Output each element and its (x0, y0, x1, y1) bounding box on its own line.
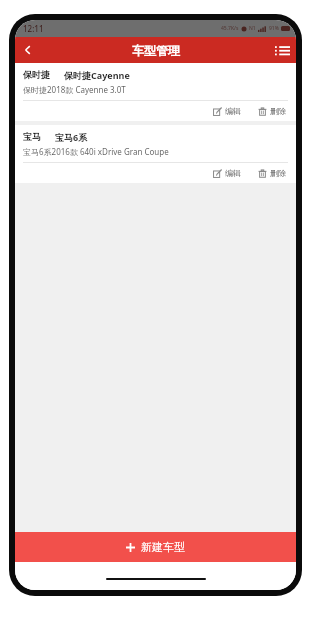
staticText: 编辑 (225, 106, 241, 116)
staticText: 编辑 (225, 168, 241, 178)
button[interactable]: 编辑 (211, 104, 243, 118)
button[interactable]: Back (15, 37, 41, 63)
staticText: N1 (249, 25, 256, 32)
button[interactable]: 删除 (256, 104, 288, 118)
staticText: 保时捷2018款 Cayenne 3.0T (23, 84, 126, 95)
staticText: 12:11 (23, 23, 44, 34)
staticText: 删除 (270, 168, 286, 178)
staticText: 保时捷 (23, 69, 50, 80)
staticText: 新建车型 (141, 540, 185, 554)
button[interactable]: 宝马 (15, 125, 296, 183)
staticText: 宝马 (23, 131, 41, 142)
button[interactable]: 保时捷 (15, 63, 296, 121)
staticText: 删除 (270, 106, 286, 116)
staticText: 45.7K/s (221, 25, 239, 32)
staticText: 91% (269, 25, 279, 32)
button[interactable]: 删除 (256, 166, 288, 180)
staticText: 宝马6系2016款 640i xDrive Gran Coupe (23, 146, 169, 157)
button[interactable]: 编辑 (211, 166, 243, 180)
staticText: 车型管理 (132, 43, 180, 58)
staticText: 宝马6系 (55, 131, 88, 143)
staticText: 保时捷Cayenne (64, 69, 130, 81)
button[interactable]: 新建车型 (15, 532, 296, 562)
button[interactable]: Menu (268, 37, 296, 63)
